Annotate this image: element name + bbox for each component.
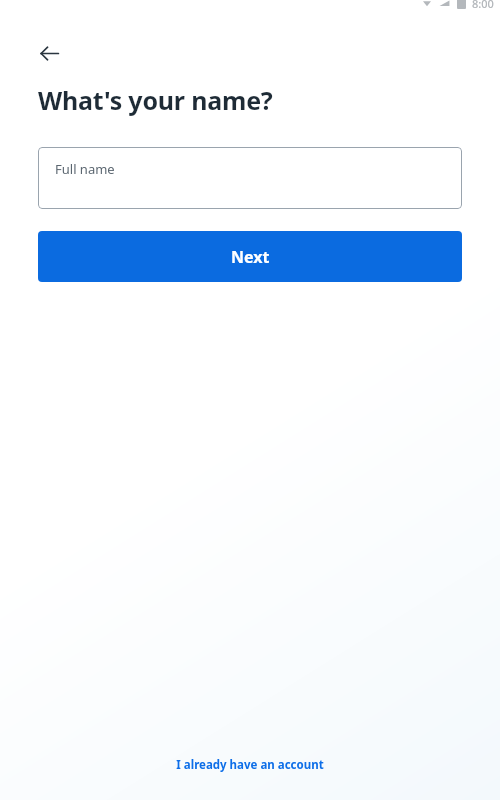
staticText: Next — [231, 246, 270, 268]
staticText: What's your name? — [38, 83, 273, 117]
button[interactable]: Next — [38, 231, 462, 282]
staticText: 8:00 — [472, 0, 494, 10]
staticText: I already have an account — [176, 757, 324, 773]
staticText: Full name — [55, 160, 115, 178]
button[interactable]: I already have an account — [0, 747, 500, 783]
button[interactable]: Full name — [38, 147, 462, 209]
button[interactable]: Back — [30, 34, 68, 72]
